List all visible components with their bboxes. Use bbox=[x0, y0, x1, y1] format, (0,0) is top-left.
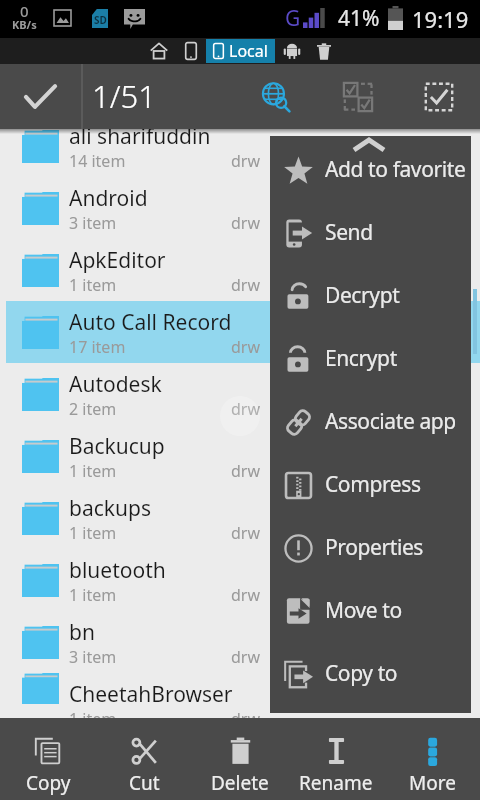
button[interactable]: Search bbox=[236, 64, 316, 129]
button[interactable]: Backucup bbox=[0, 425, 480, 487]
button[interactable]: Delete bbox=[192, 718, 288, 800]
staticText: More bbox=[409, 770, 456, 796]
staticText: backups bbox=[69, 494, 151, 523]
staticText: 41% bbox=[338, 4, 380, 33]
staticText: Cut bbox=[129, 770, 160, 796]
button[interactable]: Local bbox=[213, 39, 268, 63]
staticText: Autodesk bbox=[69, 370, 162, 399]
button[interactable]: Home bbox=[142, 38, 176, 64]
staticText: 1 item bbox=[69, 584, 117, 606]
staticText: drw bbox=[231, 150, 261, 172]
staticText: Rename bbox=[299, 770, 373, 796]
staticText: Delete bbox=[211, 770, 269, 796]
staticText: Copy to bbox=[325, 659, 398, 688]
staticText: 1 item bbox=[69, 460, 117, 482]
staticText: 0 bbox=[20, 1, 29, 21]
button[interactable]: ApkEditor bbox=[0, 239, 480, 301]
button[interactable]: bn bbox=[0, 611, 480, 673]
button[interactable]: Recycle bin bbox=[309, 38, 339, 64]
button[interactable]: Copy bbox=[0, 718, 96, 800]
button[interactable]: Select all bbox=[399, 64, 479, 129]
staticText: Properties bbox=[325, 533, 423, 562]
button[interactable]: Add to favorite bbox=[270, 139, 471, 202]
staticText: Associate app bbox=[325, 407, 456, 436]
staticText: Backucup bbox=[69, 432, 165, 461]
staticText: bluetooth bbox=[69, 556, 166, 585]
button[interactable]: CheetahBrowser bbox=[0, 673, 480, 704]
button[interactable]: Done bbox=[0, 64, 80, 129]
button[interactable]: Encrypt bbox=[270, 328, 471, 391]
staticText: Local bbox=[229, 40, 268, 62]
button[interactable]: ali sharifuddin bbox=[0, 129, 480, 177]
staticText: drw bbox=[231, 708, 261, 718]
button[interactable]: Auto Call Record bbox=[0, 301, 480, 363]
button[interactable]: Properties bbox=[270, 517, 471, 580]
staticText: drw bbox=[231, 336, 261, 358]
staticText: drw bbox=[231, 274, 261, 296]
staticText: drw bbox=[231, 646, 261, 668]
button[interactable]: Invert selection bbox=[318, 64, 398, 129]
button[interactable]: Cut bbox=[96, 718, 192, 800]
button[interactable]: Apps bbox=[275, 38, 309, 64]
button[interactable]: Copy to bbox=[270, 643, 471, 706]
button[interactable]: Associate app bbox=[270, 391, 471, 454]
staticText: drw bbox=[231, 584, 261, 606]
staticText: Auto Call Record bbox=[69, 308, 232, 337]
staticText: Encrypt bbox=[325, 344, 397, 373]
button[interactable]: Decrypt bbox=[270, 265, 471, 328]
staticText: Decrypt bbox=[325, 281, 400, 310]
staticText: 14 item bbox=[69, 150, 126, 172]
staticText: Add to favorite bbox=[325, 155, 466, 184]
staticText: Android bbox=[69, 184, 148, 213]
staticText: ali sharifuddin bbox=[69, 129, 211, 151]
staticText: 3 item bbox=[69, 646, 117, 668]
staticText: Compress bbox=[325, 470, 421, 499]
staticText: KB/s bbox=[12, 17, 37, 32]
staticText: 1 item bbox=[69, 522, 117, 544]
button[interactable]: backups bbox=[0, 487, 480, 549]
staticText: drw bbox=[231, 398, 261, 420]
button[interactable]: More bbox=[384, 718, 480, 800]
staticText: Copy bbox=[26, 770, 71, 796]
staticText: Move to bbox=[325, 596, 402, 625]
button[interactable]: Move to bbox=[270, 580, 471, 643]
staticText: ApkEditor bbox=[69, 246, 166, 275]
staticText: 2 item bbox=[69, 398, 117, 420]
button[interactable]: Android bbox=[0, 177, 480, 239]
staticText: 17 item bbox=[69, 336, 126, 358]
staticText: 19:19 bbox=[412, 4, 469, 34]
staticText: Send bbox=[325, 218, 373, 247]
staticText: G bbox=[285, 4, 301, 33]
staticText: 1 item bbox=[69, 708, 117, 718]
button[interactable]: Autodesk bbox=[0, 363, 480, 425]
button[interactable]: bluetooth bbox=[0, 549, 480, 611]
staticText: CheetahBrowser bbox=[69, 680, 233, 709]
staticText: 1/51 bbox=[92, 75, 156, 117]
staticText: drw bbox=[231, 212, 261, 234]
button[interactable]: Rename bbox=[288, 718, 384, 800]
button[interactable]: Compress bbox=[270, 454, 471, 517]
button[interactable]: Device bbox=[176, 38, 206, 64]
staticText: SD bbox=[94, 13, 107, 27]
staticText: bn bbox=[69, 618, 95, 647]
staticText: drw bbox=[231, 522, 261, 544]
staticText: 1 item bbox=[69, 274, 117, 296]
button[interactable]: Send bbox=[270, 202, 471, 265]
staticText: 3 item bbox=[69, 212, 117, 234]
staticText: drw bbox=[231, 460, 261, 482]
